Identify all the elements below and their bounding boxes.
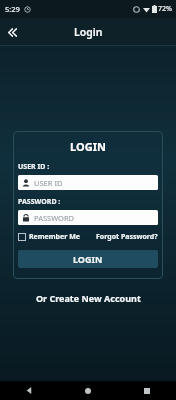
staticText: 72% xyxy=(158,4,172,14)
button[interactable]: Forgot Password? xyxy=(96,232,158,242)
staticText: PASSWORD : xyxy=(18,197,61,207)
staticText: 5:29 xyxy=(5,4,20,14)
staticText: PASSWORD xyxy=(34,213,75,223)
button[interactable]: USER ID xyxy=(18,175,158,190)
staticText: USER ID : xyxy=(18,162,50,172)
button[interactable]: Back xyxy=(0,18,28,46)
button[interactable]: Home xyxy=(58,381,117,400)
button[interactable]: Back xyxy=(0,381,58,400)
button[interactable]: Recent apps xyxy=(117,381,176,400)
staticText: Login xyxy=(74,25,103,39)
button[interactable]: LOGIN xyxy=(18,250,158,268)
button[interactable]: Or Create New Account xyxy=(0,292,176,304)
button[interactable]: PASSWORD xyxy=(18,210,158,225)
button[interactable]: Remember Me xyxy=(18,232,80,242)
staticText: USER ID xyxy=(34,178,63,188)
staticText: Or Create New Account xyxy=(36,292,141,304)
staticText: Remember Me xyxy=(29,232,80,242)
staticText: Forgot Password? xyxy=(96,232,158,242)
staticText: LOGIN xyxy=(73,253,103,265)
staticText: LOGIN xyxy=(18,139,158,154)
